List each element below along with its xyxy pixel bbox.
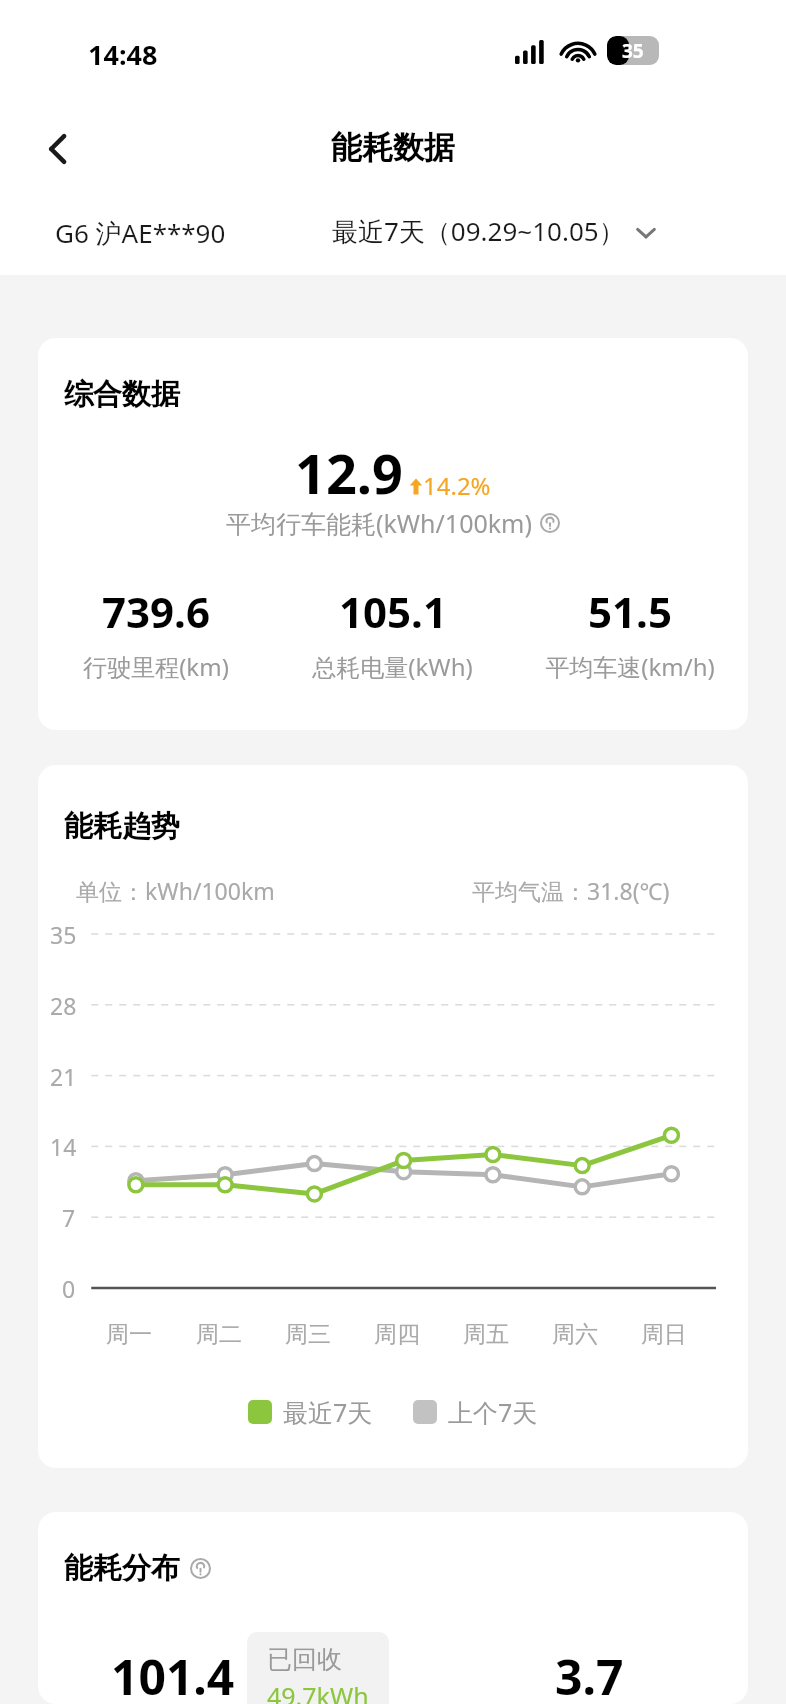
staticText: 35	[50, 919, 77, 950]
staticText: 12.9	[295, 436, 403, 510]
staticText: 周五	[463, 1320, 509, 1349]
staticText: 101.4	[111, 1644, 235, 1704]
button[interactable]: 最近7天（09.29~10.05）	[332, 213, 657, 249]
staticText: 上个7天	[448, 1395, 538, 1429]
staticText: 0	[62, 1273, 76, 1304]
staticText: 最近7天（09.29~10.05）	[332, 213, 625, 249]
staticText: 单位：kWh/100km	[76, 875, 275, 906]
staticText: 周二	[196, 1320, 242, 1349]
staticText: 能耗数据	[331, 128, 455, 167]
staticText: 21	[50, 1061, 77, 1092]
staticText: 周日	[641, 1320, 687, 1349]
staticText: 周三	[285, 1320, 331, 1349]
staticText: 已回收	[267, 1644, 342, 1675]
staticText: 总耗电量(kWh)	[312, 650, 473, 683]
staticText: 7	[62, 1202, 76, 1233]
button[interactable]: 739.6	[38, 583, 274, 683]
staticText: 平均车速(km/h)	[545, 650, 715, 683]
staticText: 行驶里程(km)	[83, 650, 229, 683]
staticText: 能耗分布	[64, 1550, 180, 1587]
staticText: 周一	[106, 1320, 152, 1349]
staticText: 49.7kWh	[267, 1679, 369, 1704]
staticText: 14	[50, 1131, 77, 1162]
staticText: G6 沪AE***90	[55, 215, 226, 251]
staticText: 周四	[374, 1320, 420, 1349]
staticText: 能耗趋势	[64, 808, 180, 845]
staticText: 平均行车能耗(kWh/100km)	[226, 506, 532, 540]
staticText: 14:48	[88, 36, 158, 73]
staticText: 35	[622, 38, 644, 64]
staticText: 最近7天	[283, 1395, 373, 1429]
staticText: 平均气温：31.8(℃)	[472, 875, 670, 906]
staticText: 14.2%	[423, 469, 491, 502]
button[interactable]: Back	[26, 117, 90, 181]
staticText: 28	[50, 990, 77, 1021]
staticText: 105.1	[339, 583, 447, 640]
button[interactable]: 51.5	[511, 583, 748, 683]
staticText: 综合数据	[64, 376, 180, 413]
staticText: 739.6	[102, 583, 210, 640]
button[interactable]: 105.1	[274, 583, 511, 683]
staticText: 3.7	[555, 1644, 624, 1704]
staticText: 51.5	[588, 583, 672, 640]
staticText: 周六	[552, 1320, 598, 1349]
